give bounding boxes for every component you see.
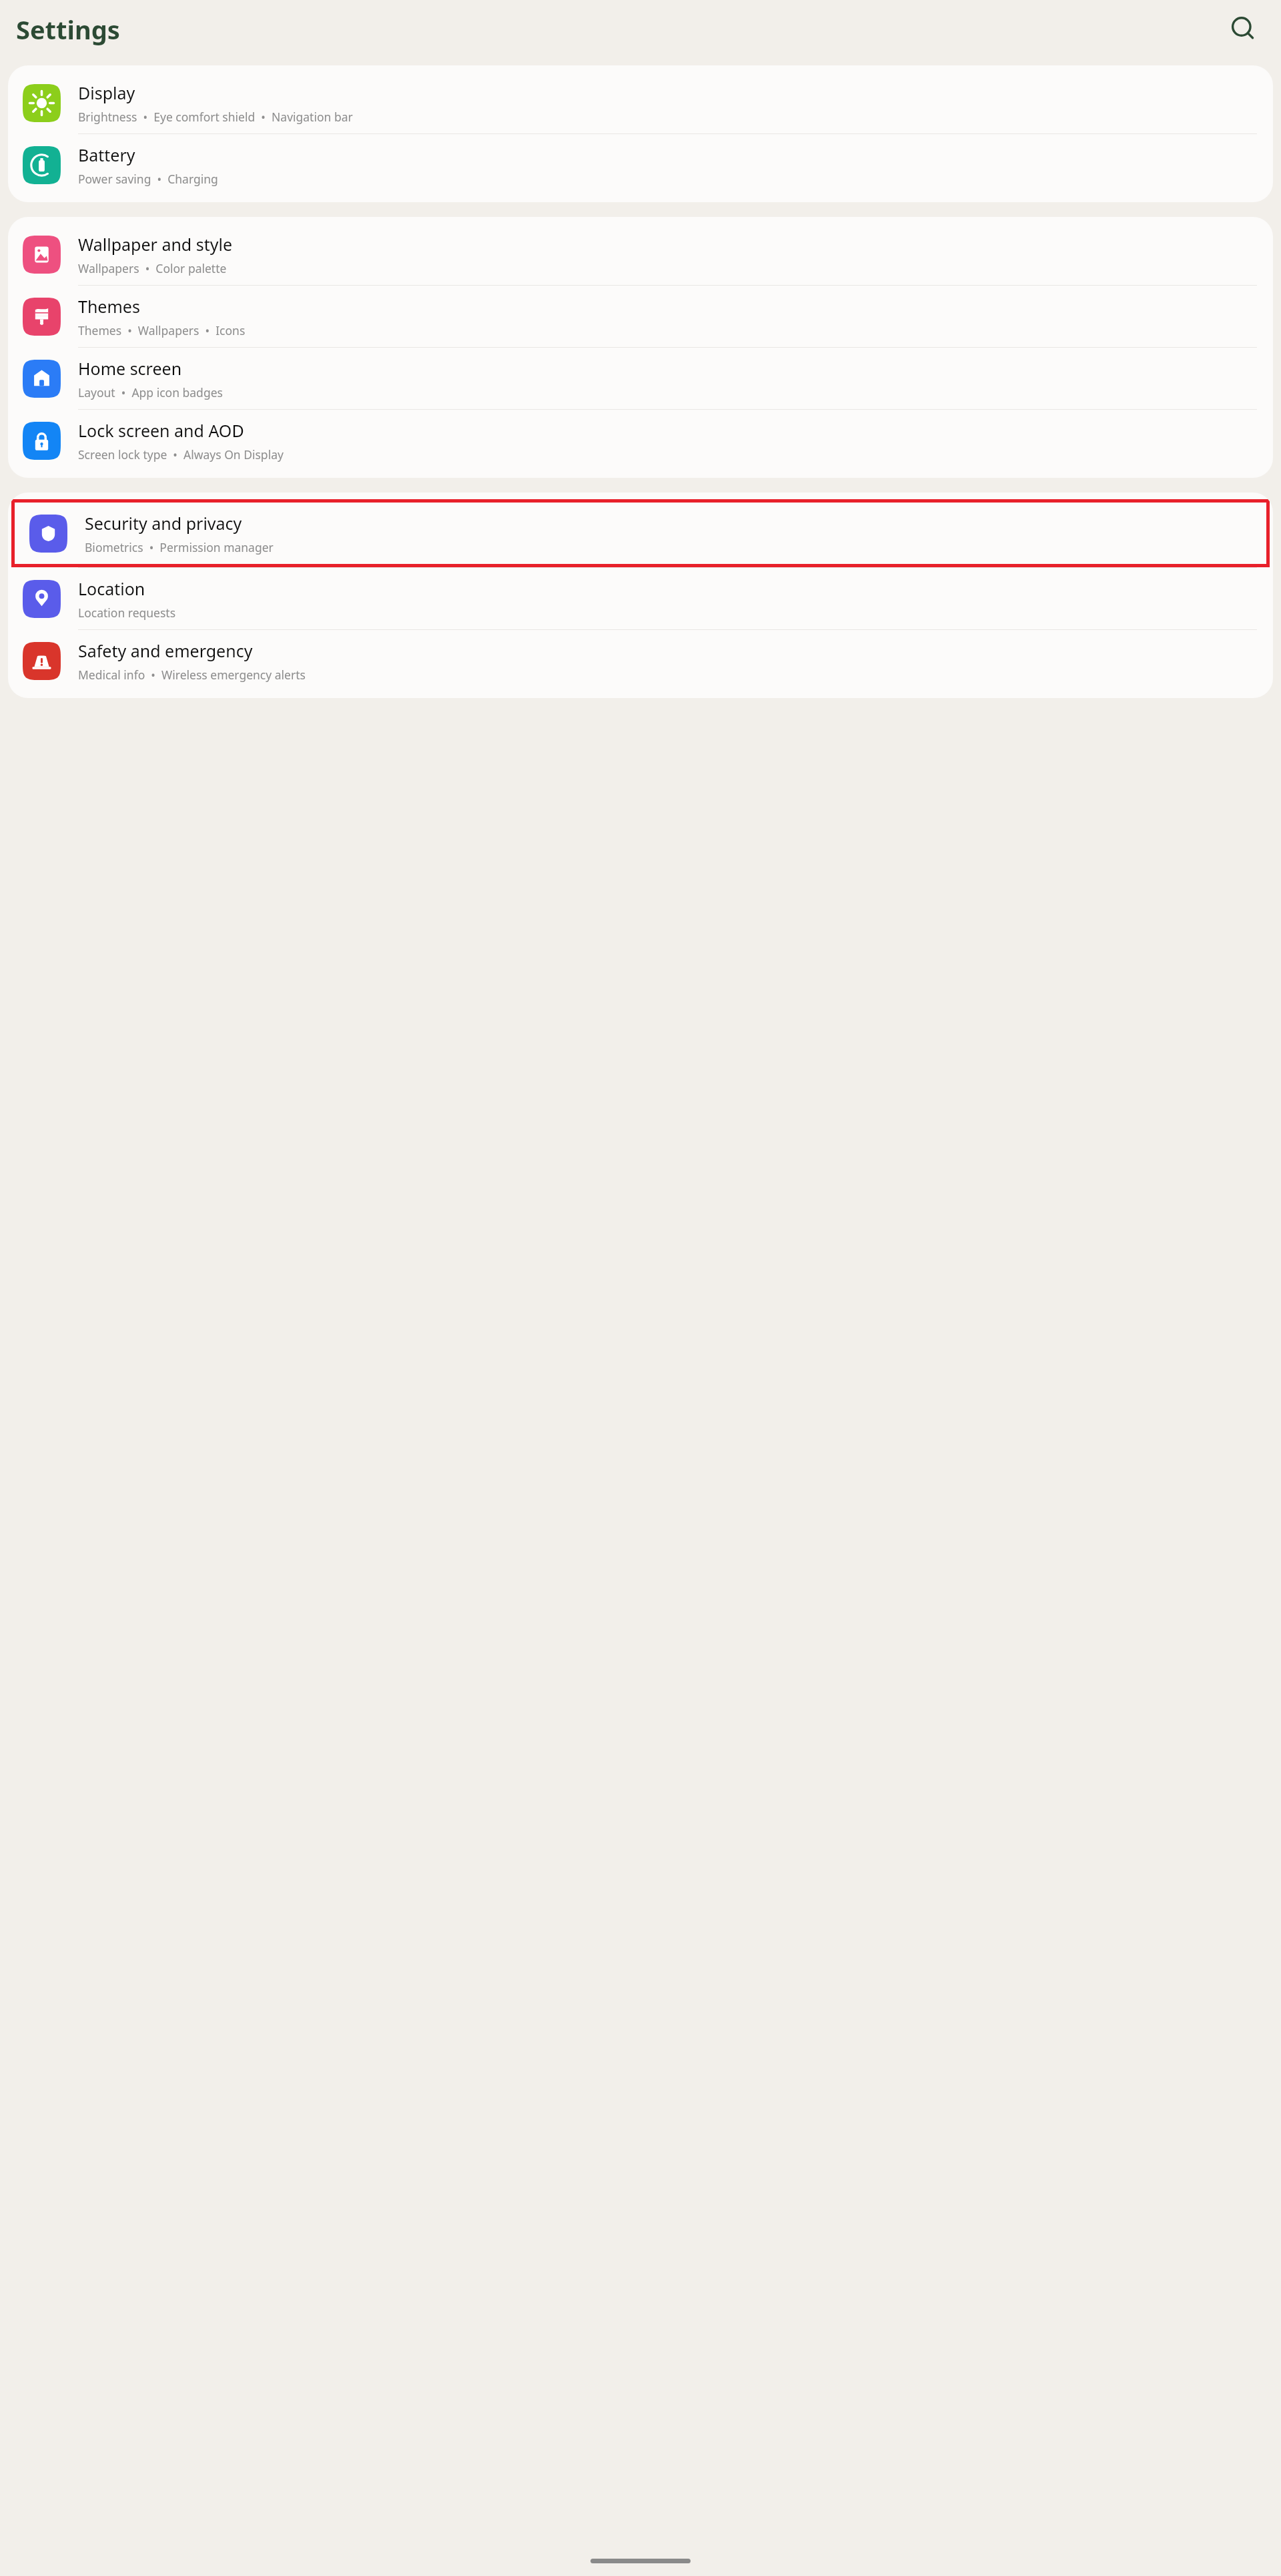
button[interactable]: Search (1225, 11, 1262, 48)
staticText: Location requests (78, 605, 176, 621)
button[interactable]: Safety and emergency (8, 630, 1273, 691)
button[interactable]: Battery (8, 134, 1273, 196)
staticText: Wallpaper and style (78, 233, 233, 256)
button[interactable]: Home screen (8, 348, 1273, 409)
staticText: Brightness • Eye comfort shield • Naviga… (78, 109, 353, 125)
staticText: Medical info • Wireless emergency alerts (78, 667, 306, 683)
staticText: Battery (78, 143, 135, 166)
staticText: Themes • Wallpapers • Icons (78, 322, 246, 338)
staticText: Wallpapers • Color palette (78, 260, 227, 276)
staticText: Settings (16, 12, 120, 47)
staticText: Screen lock type • Always On Display (78, 446, 284, 462)
button[interactable]: Wallpaper and style (8, 224, 1273, 285)
staticText: Themes (78, 295, 140, 318)
button[interactable]: Security and privacy (15, 503, 1266, 564)
staticText: Home screen (78, 357, 182, 380)
button[interactable]: Display (8, 72, 1273, 133)
staticText: Layout • App icon badges (78, 384, 223, 400)
button[interactable]: Location (8, 568, 1273, 629)
button[interactable]: Lock screen and AOD (8, 410, 1273, 471)
staticText: Lock screen and AOD (78, 419, 244, 442)
staticText: Biometrics • Permission manager (85, 539, 274, 555)
staticText: Power saving • Charging (78, 171, 218, 187)
button[interactable]: Themes (8, 286, 1273, 347)
staticText: Safety and emergency (78, 639, 253, 662)
staticText: Security and privacy (85, 512, 242, 535)
staticText: Display (78, 81, 135, 104)
staticText: Location (78, 577, 145, 600)
